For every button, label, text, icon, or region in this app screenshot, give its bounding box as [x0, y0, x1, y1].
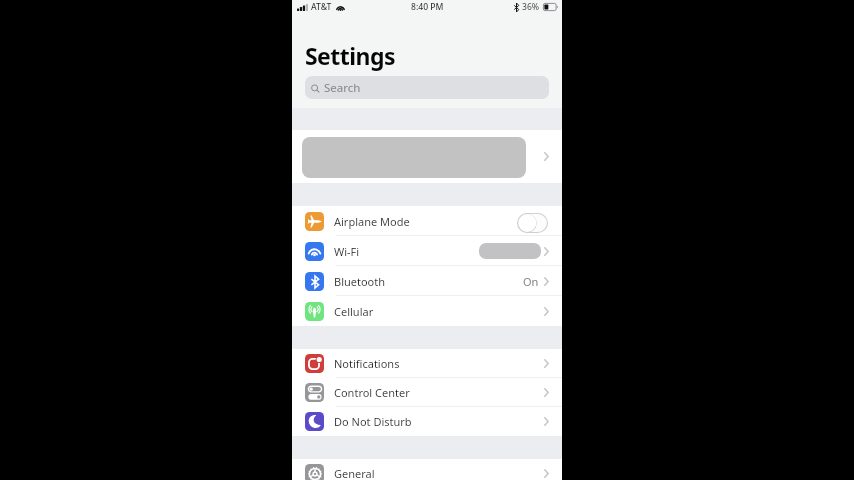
staticText: Airplane Mode	[334, 214, 410, 229]
button[interactable]: Bluetooth	[292, 266, 562, 296]
staticText: General	[334, 466, 375, 480]
staticText: Cellular	[334, 304, 374, 319]
staticText: Bluetooth	[334, 274, 386, 289]
staticText: Notifications	[334, 356, 400, 371]
button[interactable]: Wi-Fi	[292, 236, 562, 266]
staticText: Control Center	[334, 385, 410, 400]
button[interactable]: Airplane Mode	[292, 206, 562, 236]
button[interactable]: Control Center	[292, 378, 562, 407]
staticText: Search	[324, 80, 361, 96]
button[interactable]: General	[292, 459, 562, 480]
button[interactable]: Notifications	[292, 349, 562, 378]
staticText: On	[523, 274, 539, 289]
staticText: Settings	[305, 40, 395, 71]
staticText: Do Not Disturb	[334, 414, 412, 429]
button[interactable]: Apple ID, iCloud, iTunes & App Store	[292, 130, 562, 183]
button[interactable]: Search	[305, 76, 549, 99]
button[interactable]: Do Not Disturb	[292, 407, 562, 436]
staticText: 36%	[522, 1, 540, 13]
staticText: Wi-Fi	[334, 244, 360, 259]
staticText: AT&T	[311, 1, 332, 13]
staticText: 8:40 PM	[411, 1, 444, 13]
button[interactable]: Cellular	[292, 296, 562, 326]
